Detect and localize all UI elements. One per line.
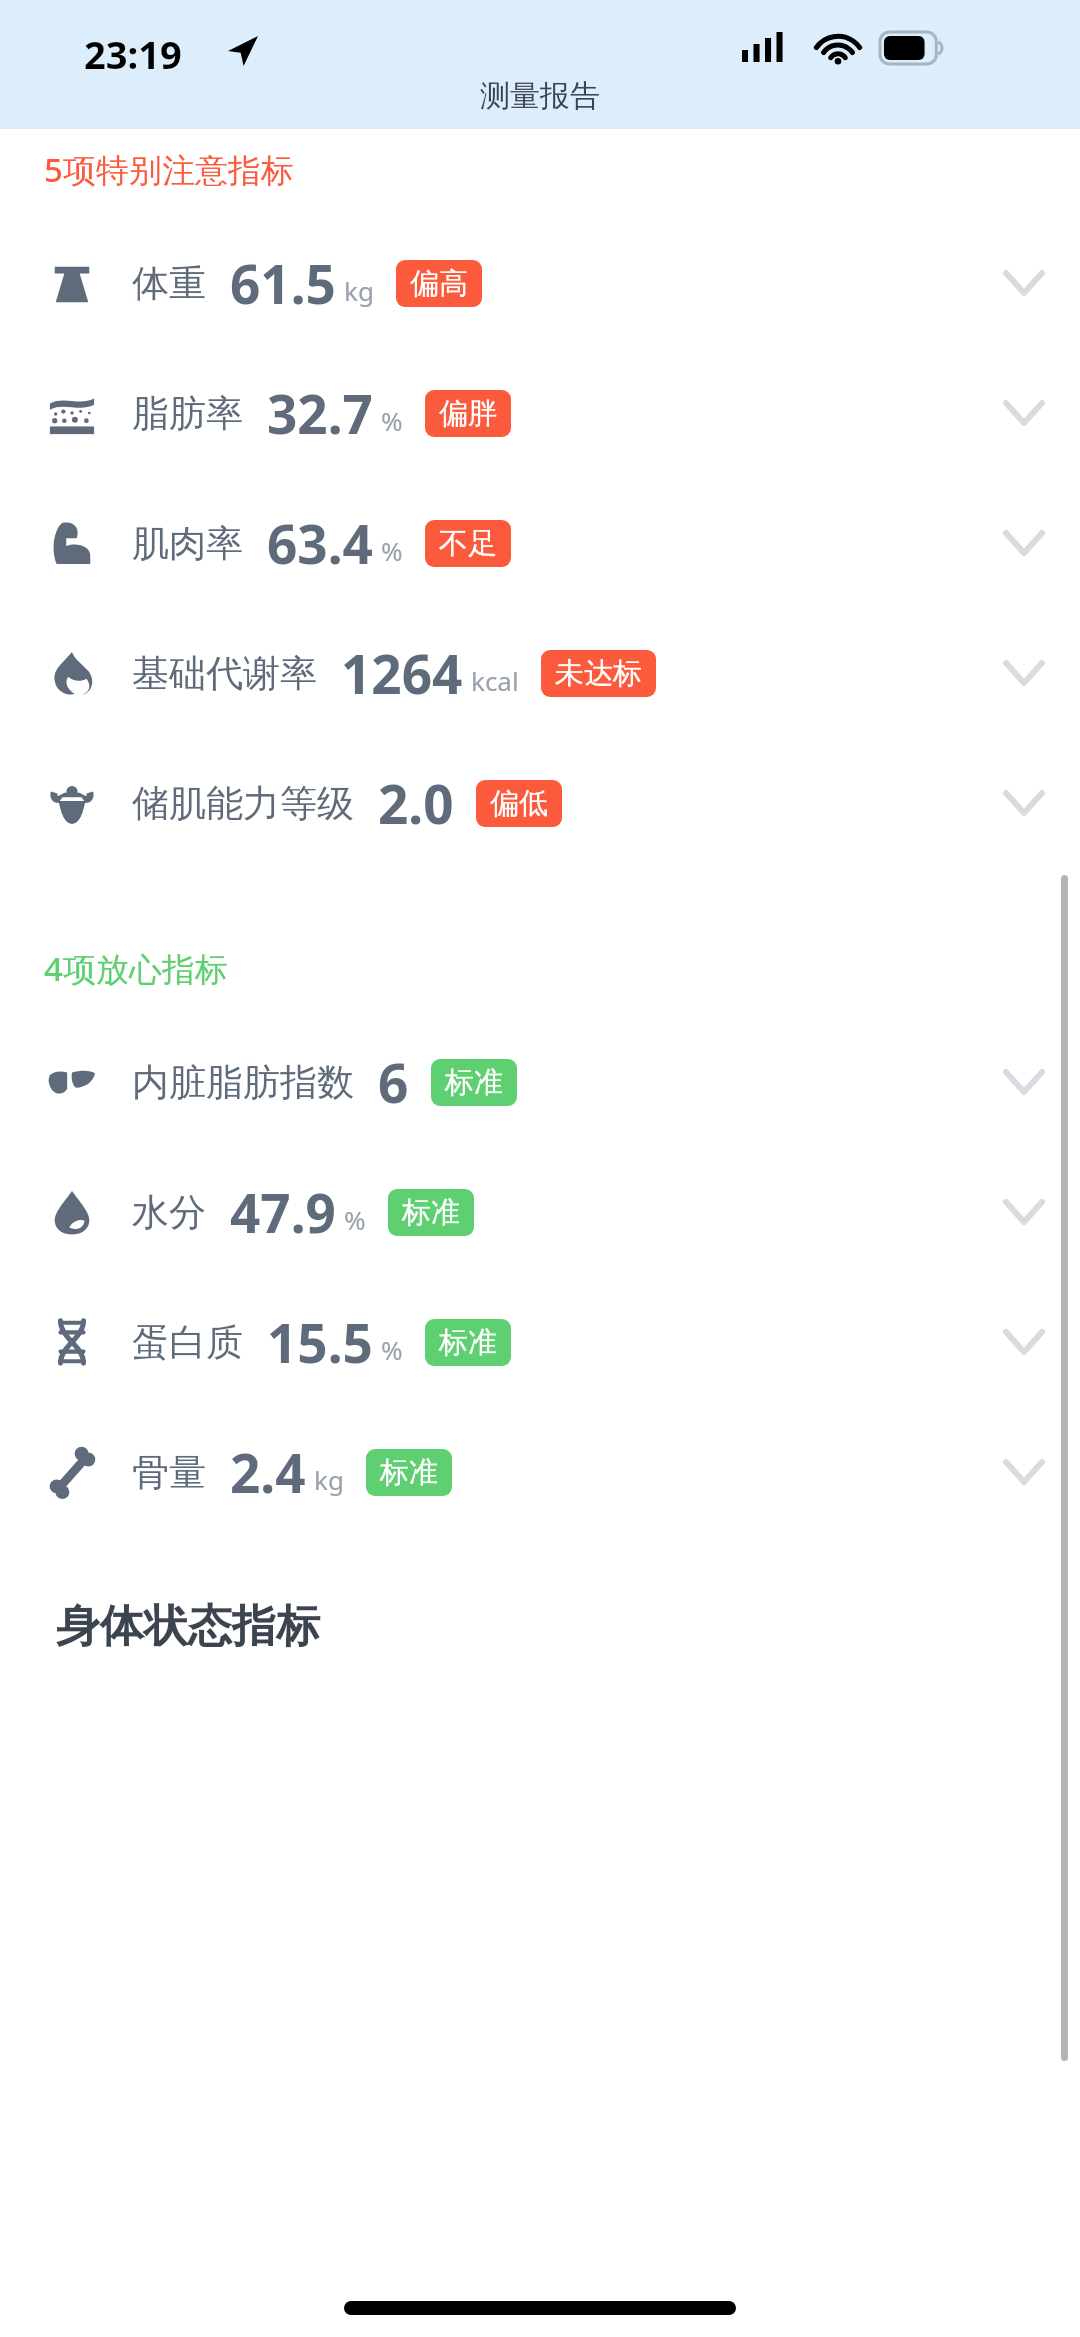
staticText: 47.9 [230,1176,336,1248]
staticText: 水分 [132,1189,206,1236]
staticText: 储肌能力等级 [132,780,354,827]
staticText: 标准 [439,1324,497,1361]
staticText: 2.4 [230,1436,306,1508]
button[interactable]: 体重 [0,218,1080,348]
staticText: 未达标 [555,655,642,692]
staticText: 身体状态指标 [56,1599,320,1654]
button[interactable]: 展开 体重 [994,253,1054,313]
staticText: 蛋白质 [132,1319,243,1366]
staticText: kcal [471,663,519,698]
staticText: % [381,403,403,438]
button[interactable]: 内脏脂肪指数 [0,1017,1080,1147]
button[interactable]: 展开 蛋白质 [994,1312,1054,1372]
button[interactable]: 蛋白质 [0,1277,1080,1407]
staticText: % [381,533,403,568]
staticText: 23:19 [84,28,182,80]
button[interactable]: 展开 基础代谢率 [994,643,1054,703]
staticText: 4项放心指标 [44,946,228,991]
button[interactable]: 储肌能力等级 [0,738,1080,868]
staticText: 偏胖 [439,395,497,432]
staticText: 61.5 [230,247,336,319]
staticText: 2.0 [378,767,454,839]
button[interactable]: 基础代谢率 [0,608,1080,738]
staticText: 不足 [439,525,497,562]
staticText: 肌肉率 [132,520,243,567]
staticText: 骨量 [132,1449,206,1496]
staticText: 内脏脂肪指数 [132,1059,354,1106]
button[interactable]: 展开 肌肉率 [994,513,1054,573]
staticText: 脂肪率 [132,390,243,437]
staticText: 基础代谢率 [132,650,317,697]
staticText: 5项特别注意指标 [44,147,294,192]
button[interactable]: 展开 内脏脂肪指数 [994,1052,1054,1112]
button[interactable]: 展开 脂肪率 [994,383,1054,443]
staticText: kg [344,273,374,308]
staticText: kg [314,1462,344,1497]
button[interactable]: 展开 骨量 [994,1442,1054,1502]
button[interactable]: 水分 [0,1147,1080,1277]
staticText: 标准 [445,1064,503,1101]
staticText: 体重 [132,260,206,307]
staticText: 15.5 [267,1306,373,1378]
staticText: 63.4 [267,507,373,579]
staticText: % [344,1202,366,1237]
staticText: 32.7 [267,377,373,449]
staticText: 1264 [341,637,463,709]
button[interactable]: 展开 水分 [994,1182,1054,1242]
staticText: 标准 [380,1454,438,1491]
button[interactable]: 肌肉率 [0,478,1080,608]
staticText: 偏低 [490,785,548,822]
button[interactable]: 展开 储肌能力等级 [994,773,1054,833]
staticText: 标准 [402,1194,460,1231]
staticText: 偏高 [410,265,468,302]
staticText: % [381,1332,403,1367]
staticText: 测量报告 [480,77,600,115]
button[interactable]: 骨量 [0,1407,1080,1537]
button[interactable]: 脂肪率 [0,348,1080,478]
staticText: 6 [378,1046,409,1118]
